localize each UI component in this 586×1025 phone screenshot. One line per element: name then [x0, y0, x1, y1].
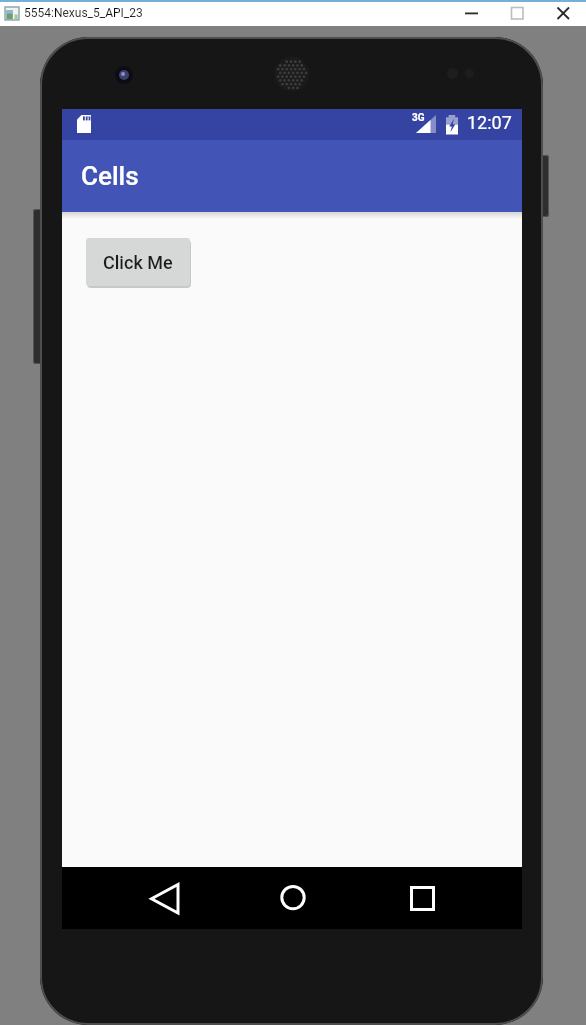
staticText: Cells: [81, 161, 139, 191]
button[interactable]: Click Me: [86, 238, 190, 286]
staticText: 12:07: [467, 112, 512, 133]
button[interactable]: [448, 0, 494, 26]
button[interactable]: [540, 0, 586, 26]
button[interactable]: [494, 0, 540, 26]
staticText: Click Me: [103, 252, 173, 273]
button[interactable]: [391, 867, 453, 929]
button[interactable]: [133, 867, 195, 929]
staticText: 3G: [412, 112, 425, 124]
staticText: 5554:Nexus_5_API_23: [24, 6, 143, 20]
button[interactable]: [262, 867, 324, 929]
